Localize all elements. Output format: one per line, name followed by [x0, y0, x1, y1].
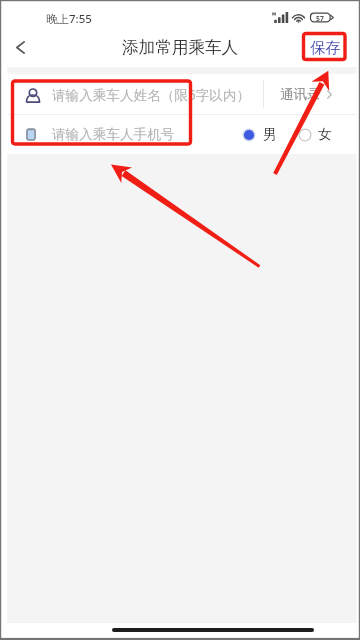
staticText: 男 — [263, 126, 277, 143]
button[interactable]: 通讯录 — [264, 74, 360, 114]
button[interactable]: 返回 — [0, 30, 41, 67]
button[interactable]: 请输入乘车人姓名（限5字以内） — [0, 74, 360, 114]
button[interactable]: 男 — [242, 115, 277, 154]
staticText: 保存 — [310, 38, 341, 58]
staticText: 请输入乘车人手机号 — [52, 126, 175, 143]
staticText: 晚上7:55 — [46, 11, 92, 27]
staticText: 57 — [316, 14, 324, 23]
button[interactable]: 保存 — [309, 33, 360, 63]
staticText: 通讯录 — [280, 86, 321, 103]
staticText: 添加常用乘车人 — [122, 37, 239, 58]
staticText: 女 — [318, 126, 332, 143]
button[interactable]: 女 — [298, 115, 332, 154]
staticText: 请输入乘车人姓名（限5字以内） — [52, 85, 251, 104]
